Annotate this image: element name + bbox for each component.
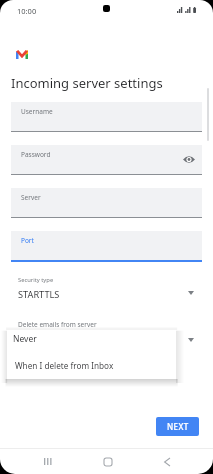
staticText: Incoming server settings: [11, 74, 163, 92]
button[interactable]: When I delete from Inbox: [7, 354, 176, 379]
staticText: Password: [21, 150, 51, 159]
button[interactable]: Open dropdown: [184, 333, 198, 346]
staticText: Port: [21, 236, 34, 245]
button[interactable]: NEXT: [156, 417, 199, 436]
button[interactable]: Password: [11, 145, 202, 175]
staticText: Server: [21, 193, 41, 202]
button[interactable]: Port: [11, 231, 202, 262]
button[interactable]: Back: [152, 449, 182, 474]
button[interactable]: Security type: [0, 276, 213, 306]
staticText: NEXT: [167, 421, 189, 432]
staticText: When I delete from Inbox: [15, 360, 114, 371]
button[interactable]: Server: [11, 188, 202, 218]
staticText: Never: [13, 333, 37, 345]
button[interactable]: Username: [11, 102, 202, 132]
staticText: STARTTLS: [18, 288, 60, 301]
staticText: Delete emails from server: [18, 320, 97, 329]
staticText: Username: [21, 107, 53, 116]
button[interactable]: Home: [93, 449, 123, 474]
button[interactable]: Never: [7, 330, 176, 354]
button[interactable]: Recent apps: [33, 449, 63, 474]
staticText: Security type: [18, 276, 54, 284]
staticText: 10:00: [17, 6, 37, 16]
